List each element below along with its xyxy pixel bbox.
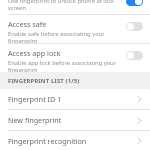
staticText: Fingerprint ID 1 xyxy=(8,94,137,104)
button[interactable]: Toggle off xyxy=(126,22,143,31)
staticText: Access app lock xyxy=(8,48,61,58)
staticText: Fingerprint recognition xyxy=(8,136,137,146)
button[interactable]: Fingerprint ID 1 xyxy=(0,89,150,109)
button[interactable]: Fingerprint recognition xyxy=(0,131,150,150)
staticText: Use fingerprint to unlock phone at lock … xyxy=(8,0,122,11)
button[interactable]: Use fingerprint to unlock phone at lock … xyxy=(0,0,150,14)
staticText: Enable safe before associating your fing… xyxy=(8,30,105,43)
button[interactable]: Access app lock xyxy=(0,44,150,72)
button[interactable]: Toggle on xyxy=(126,0,143,6)
staticText: Enable app lock before associating your … xyxy=(8,59,117,72)
button[interactable]: Toggle off xyxy=(126,51,143,60)
staticText: New fingerprint xyxy=(8,115,137,125)
staticText: FINGERPRINT LIST (1/5) xyxy=(8,77,80,85)
button[interactable]: New fingerprint xyxy=(0,110,150,130)
staticText: Access safe xyxy=(8,19,47,29)
button[interactable]: Access safe xyxy=(0,15,150,43)
